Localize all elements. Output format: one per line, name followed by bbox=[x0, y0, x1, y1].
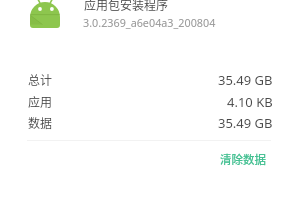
button[interactable]: 清除数据 bbox=[212, 146, 274, 173]
staticText: 应用包安装程序 bbox=[84, 0, 169, 13]
staticText: 清除数据 bbox=[220, 151, 266, 168]
staticText: 应用 bbox=[28, 93, 53, 110]
button[interactable]: 应用 bbox=[0, 91, 300, 112]
staticText: 35.49 GB bbox=[218, 71, 273, 89]
staticText: 总计 bbox=[28, 71, 53, 88]
button[interactable]: 数据 bbox=[0, 112, 300, 133]
staticText: 35.49 GB bbox=[218, 114, 273, 132]
staticText: 数据 bbox=[28, 114, 53, 131]
button[interactable]: 总计 bbox=[0, 69, 300, 90]
staticText: 4.10 KB bbox=[227, 93, 273, 111]
staticText: 3.0.2369_a6e04a3_200804 bbox=[83, 15, 216, 30]
